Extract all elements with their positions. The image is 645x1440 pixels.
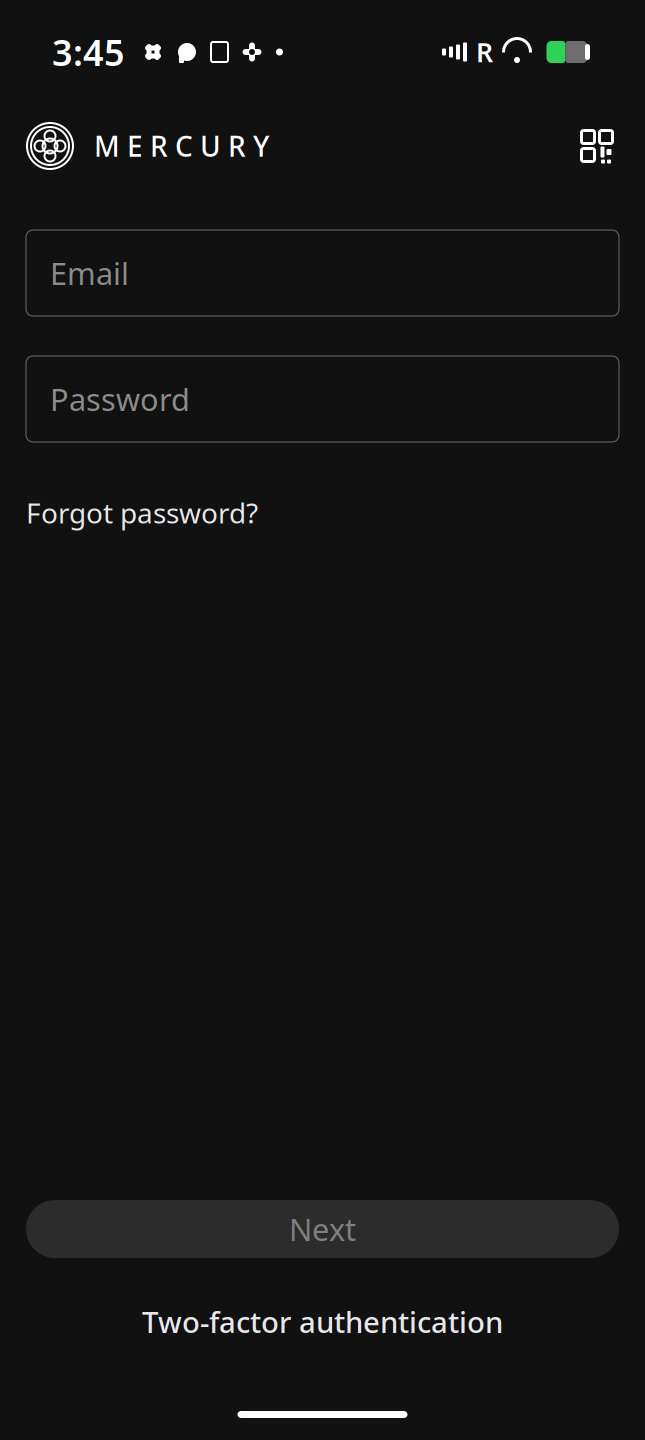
staticText: 3:45 (52, 28, 125, 76)
staticText: Password (50, 379, 190, 419)
staticText: M E R C U R Y (94, 127, 269, 165)
button[interactable]: Email (26, 230, 619, 316)
button[interactable]: Next (26, 1200, 619, 1258)
staticText: Forgot password? (26, 494, 258, 531)
staticText: Email (50, 253, 129, 293)
button[interactable]: Password (26, 356, 619, 442)
button[interactable]: Two-factor authentication (126, 1292, 519, 1351)
button[interactable]: Scan QR code (575, 124, 619, 168)
staticText: Next (289, 1209, 356, 1249)
button[interactable]: Forgot password? (26, 486, 266, 539)
staticText: Two-factor authentication (142, 1302, 503, 1341)
staticText: R (476, 34, 493, 70)
